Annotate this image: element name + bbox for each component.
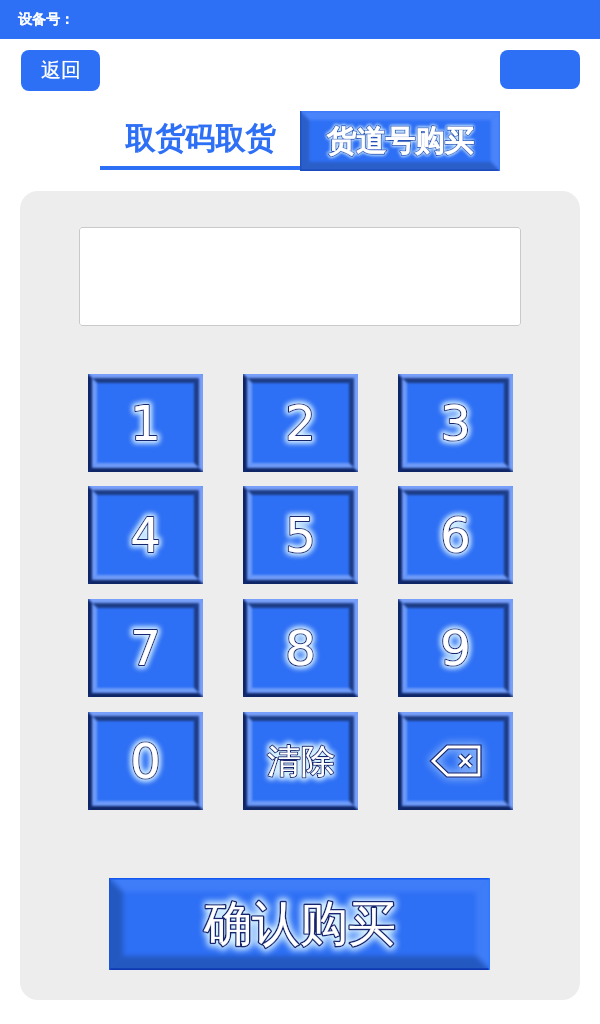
staticText: 5 bbox=[285, 507, 316, 563]
button[interactable]: 1 bbox=[88, 374, 203, 472]
staticText: 货道号购买 bbox=[326, 123, 474, 160]
staticText: 3 bbox=[440, 395, 471, 451]
staticText: 4 bbox=[130, 507, 161, 563]
staticText: 货道号购买 bbox=[326, 123, 474, 160]
staticText: 6 bbox=[440, 507, 471, 563]
button[interactable]: 清除 bbox=[243, 712, 358, 810]
staticText: 7 bbox=[130, 620, 161, 676]
staticText: 6 bbox=[440, 507, 471, 563]
staticText: 1 bbox=[130, 395, 161, 451]
staticText: 1 bbox=[130, 395, 161, 451]
button[interactable]: 确认购买 bbox=[109, 878, 490, 970]
button[interactable]: 取货码取货 bbox=[100, 111, 300, 166]
staticText: 清除 bbox=[267, 740, 335, 783]
staticText: 3 bbox=[440, 395, 471, 451]
staticText: 确认购买 bbox=[204, 894, 396, 954]
button[interactable]: 2 bbox=[243, 374, 358, 472]
staticText: 4 bbox=[130, 507, 161, 563]
staticText: 清除 bbox=[267, 740, 335, 783]
button[interactable]: 7 bbox=[88, 599, 203, 697]
button[interactable]: 5 bbox=[243, 486, 358, 584]
staticText: 8 bbox=[285, 620, 316, 676]
staticText: 7 bbox=[130, 620, 161, 676]
staticText: 清除 bbox=[267, 740, 335, 783]
button[interactable]: 8 bbox=[243, 599, 358, 697]
staticText: 2 bbox=[285, 395, 316, 451]
button[interactable]: 退格 bbox=[398, 712, 513, 810]
staticText: 4 bbox=[130, 507, 161, 563]
button[interactable]: 6 bbox=[398, 486, 513, 584]
button[interactable]: 4 bbox=[88, 486, 203, 584]
button[interactable]: 返回 bbox=[21, 50, 100, 91]
staticText: 5 bbox=[285, 507, 316, 563]
staticText: 取货码取货 bbox=[125, 120, 275, 158]
staticText: 9 bbox=[440, 620, 471, 676]
button[interactable]: 货道号购买 bbox=[300, 111, 500, 171]
staticText: 6 bbox=[440, 507, 471, 563]
staticText: 8 bbox=[285, 620, 316, 676]
staticText: 设备号： bbox=[18, 11, 74, 29]
staticText: 0 bbox=[130, 733, 161, 789]
staticText: 9 bbox=[440, 620, 471, 676]
button[interactable] bbox=[79, 227, 521, 326]
staticText: 1 bbox=[130, 395, 161, 451]
button[interactable]: 9 bbox=[398, 599, 513, 697]
button[interactable]: 更多操作 bbox=[500, 50, 580, 89]
button[interactable]: 0 bbox=[88, 712, 203, 810]
staticText: 0 bbox=[130, 733, 161, 789]
staticText: 5 bbox=[285, 507, 316, 563]
staticText: 返回 bbox=[41, 58, 81, 83]
staticText: 8 bbox=[285, 620, 316, 676]
staticText: 0 bbox=[130, 733, 161, 789]
staticText: 确认购买 bbox=[204, 894, 396, 954]
staticText: 2 bbox=[285, 395, 316, 451]
staticText: 确认购买 bbox=[204, 894, 396, 954]
staticText: 3 bbox=[440, 395, 471, 451]
staticText: 7 bbox=[130, 620, 161, 676]
button[interactable]: 3 bbox=[398, 374, 513, 472]
staticText: 2 bbox=[285, 395, 316, 451]
staticText: 货道号购买 bbox=[326, 123, 474, 160]
staticText: 9 bbox=[440, 620, 471, 676]
